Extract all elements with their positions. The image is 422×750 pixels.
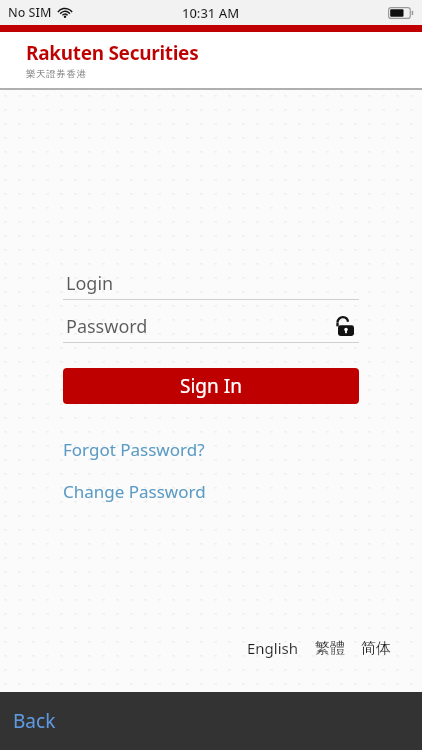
button[interactable]: 简体 xyxy=(359,639,393,658)
staticText: 樂天證券香港 xyxy=(26,68,87,80)
button[interactable]: Forgot Password? xyxy=(63,438,205,461)
staticText: Back xyxy=(13,708,56,734)
button[interactable]: Change Password xyxy=(63,480,206,503)
staticText: Password xyxy=(66,314,148,339)
button[interactable]: Sign In xyxy=(63,368,359,404)
staticText: English xyxy=(247,638,299,658)
staticText: 简体 xyxy=(361,639,391,658)
staticText: Change Password xyxy=(63,480,206,503)
button[interactable]: English xyxy=(245,638,301,658)
staticText: Forgot Password? xyxy=(63,438,205,461)
staticText: 10:31 AM xyxy=(182,4,240,22)
button[interactable]: 繁體 xyxy=(313,639,347,658)
staticText: 繁體 xyxy=(315,639,345,658)
button[interactable]: Login xyxy=(63,266,359,300)
button[interactable]: Back xyxy=(13,708,56,734)
staticText: No SIM xyxy=(8,4,52,21)
staticText: Login xyxy=(66,271,114,296)
staticText: Sign In xyxy=(180,373,242,399)
staticText: Rakuten Securities xyxy=(26,40,199,66)
button[interactable]: Toggle password visibility xyxy=(335,315,357,337)
button[interactable]: Password xyxy=(63,309,359,343)
